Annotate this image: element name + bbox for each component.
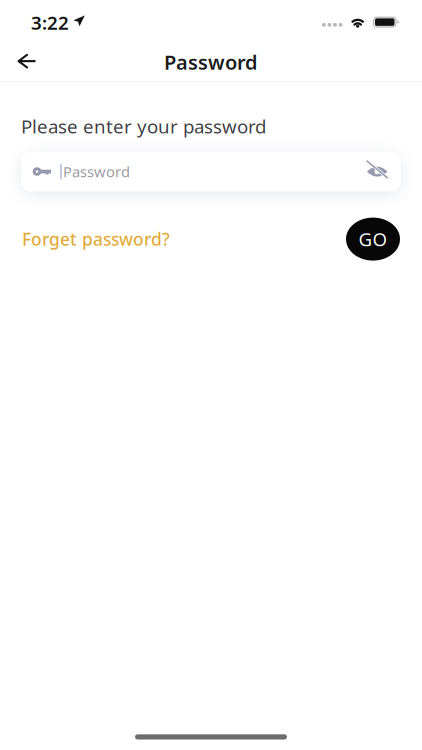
button[interactable]: Forget password? bbox=[22, 228, 170, 251]
staticText: GO bbox=[358, 227, 387, 251]
button[interactable]: Show password bbox=[366, 161, 388, 182]
staticText: Password bbox=[63, 162, 130, 181]
button[interactable]: Back bbox=[0, 43, 54, 81]
staticText: 3:22 bbox=[31, 10, 69, 35]
button[interactable]: GO bbox=[346, 218, 400, 261]
staticText: Forget password? bbox=[22, 228, 170, 251]
staticText: Please enter your password bbox=[21, 114, 266, 139]
staticText: Password bbox=[164, 49, 258, 75]
